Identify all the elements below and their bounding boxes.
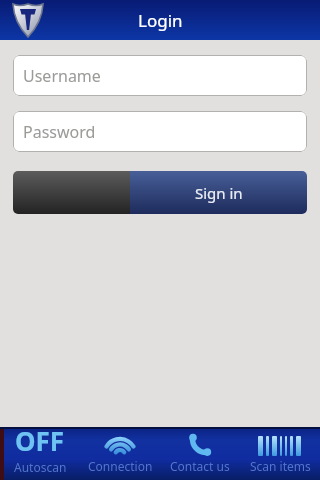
button[interactable]: Username bbox=[13, 55, 307, 96]
staticText: Username bbox=[23, 65, 101, 87]
button[interactable]: Scan items bbox=[240, 427, 320, 480]
button[interactable]: Contact us bbox=[160, 427, 240, 480]
staticText: Login bbox=[138, 9, 183, 32]
button[interactable]: Password bbox=[13, 111, 307, 152]
staticText: OFF bbox=[15, 423, 65, 458]
staticText: Password bbox=[23, 121, 96, 143]
staticText: Scan items bbox=[250, 458, 311, 474]
button[interactable]: Connection bbox=[80, 427, 160, 480]
staticText: Sign in bbox=[195, 183, 243, 203]
staticText: Contact us bbox=[170, 458, 230, 474]
staticText: Connection bbox=[88, 458, 153, 474]
button[interactable]: OFF bbox=[0, 427, 80, 480]
staticText: Autoscan bbox=[14, 459, 67, 475]
button[interactable] bbox=[13, 171, 130, 214]
button[interactable]: Sign in bbox=[130, 171, 307, 214]
